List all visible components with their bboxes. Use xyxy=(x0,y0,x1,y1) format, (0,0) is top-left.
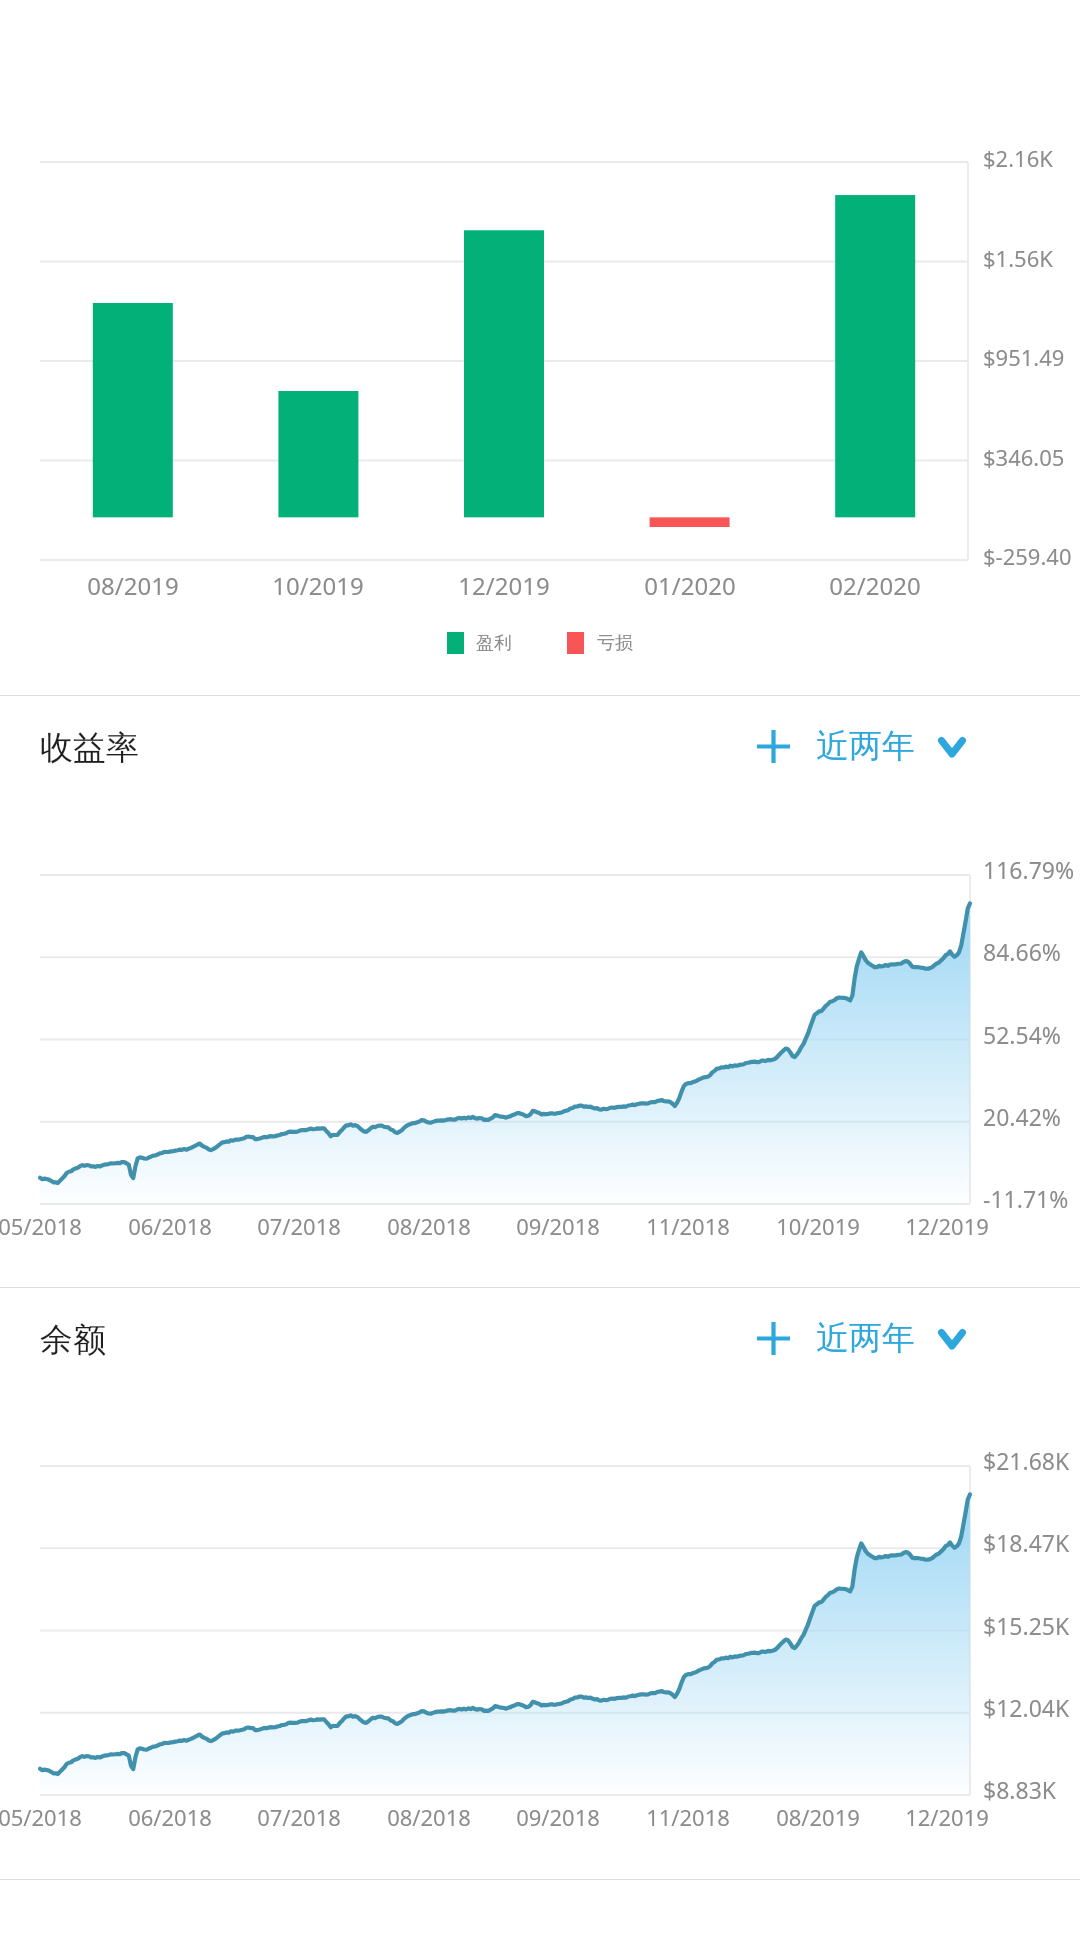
other: Change range xyxy=(938,730,966,763)
other: Add series xyxy=(757,1322,790,1355)
staticText: 10/2019 xyxy=(272,569,364,602)
staticText: 07/2018 xyxy=(257,1211,341,1241)
staticText: $8.83K xyxy=(983,1774,1057,1805)
staticText: $21.68K xyxy=(983,1445,1070,1476)
staticText: $15.25K xyxy=(983,1610,1070,1641)
staticText: $951.49 xyxy=(983,342,1065,372)
staticText: 近两年 xyxy=(816,725,915,767)
staticText: 52.54% xyxy=(983,1019,1061,1050)
staticText: 08/2019 xyxy=(776,1802,860,1832)
staticText: 01/2020 xyxy=(644,569,736,602)
staticText: -11.71% xyxy=(983,1183,1069,1214)
staticText: 05/2018 xyxy=(0,1802,82,1832)
staticText: 12/2019 xyxy=(905,1802,989,1832)
staticText: 12/2019 xyxy=(458,569,550,602)
staticText: 亏损 xyxy=(597,632,633,655)
staticText: 盈利 xyxy=(476,632,512,655)
staticText: $18.47K xyxy=(983,1527,1070,1558)
staticText: 11/2018 xyxy=(646,1211,730,1241)
other: Change range xyxy=(938,1322,966,1355)
staticText: 02/2020 xyxy=(829,569,921,602)
staticText: $346.05 xyxy=(983,442,1065,472)
staticText: 05/2018 xyxy=(0,1211,82,1241)
staticText: 11/2018 xyxy=(646,1802,730,1832)
staticText: 收益率 xyxy=(40,727,139,769)
staticText: $2.16K xyxy=(983,143,1053,173)
staticText: $12.04K xyxy=(983,1692,1070,1723)
staticText: $1.56K xyxy=(983,243,1053,273)
staticText: 余额 xyxy=(40,1319,106,1361)
staticText: 06/2018 xyxy=(128,1211,212,1241)
staticText: 84.66% xyxy=(983,936,1061,967)
staticText: 06/2018 xyxy=(128,1802,212,1832)
staticText: 09/2018 xyxy=(516,1211,600,1241)
button[interactable]: Add series xyxy=(757,711,966,781)
staticText: 08/2019 xyxy=(87,569,179,602)
staticText: 近两年 xyxy=(816,1317,915,1359)
staticText: 08/2018 xyxy=(387,1211,471,1241)
staticText: 07/2018 xyxy=(257,1802,341,1832)
staticText: 20.42% xyxy=(983,1101,1061,1132)
button[interactable]: Add series xyxy=(757,1303,966,1373)
staticText: 09/2018 xyxy=(516,1802,600,1832)
staticText: 116.79% xyxy=(983,854,1075,885)
staticText: 10/2019 xyxy=(776,1211,860,1241)
staticText: $-259.40 xyxy=(983,541,1072,571)
staticText: 12/2019 xyxy=(905,1211,989,1241)
staticText: 08/2018 xyxy=(387,1802,471,1832)
other: Add series xyxy=(757,730,790,763)
